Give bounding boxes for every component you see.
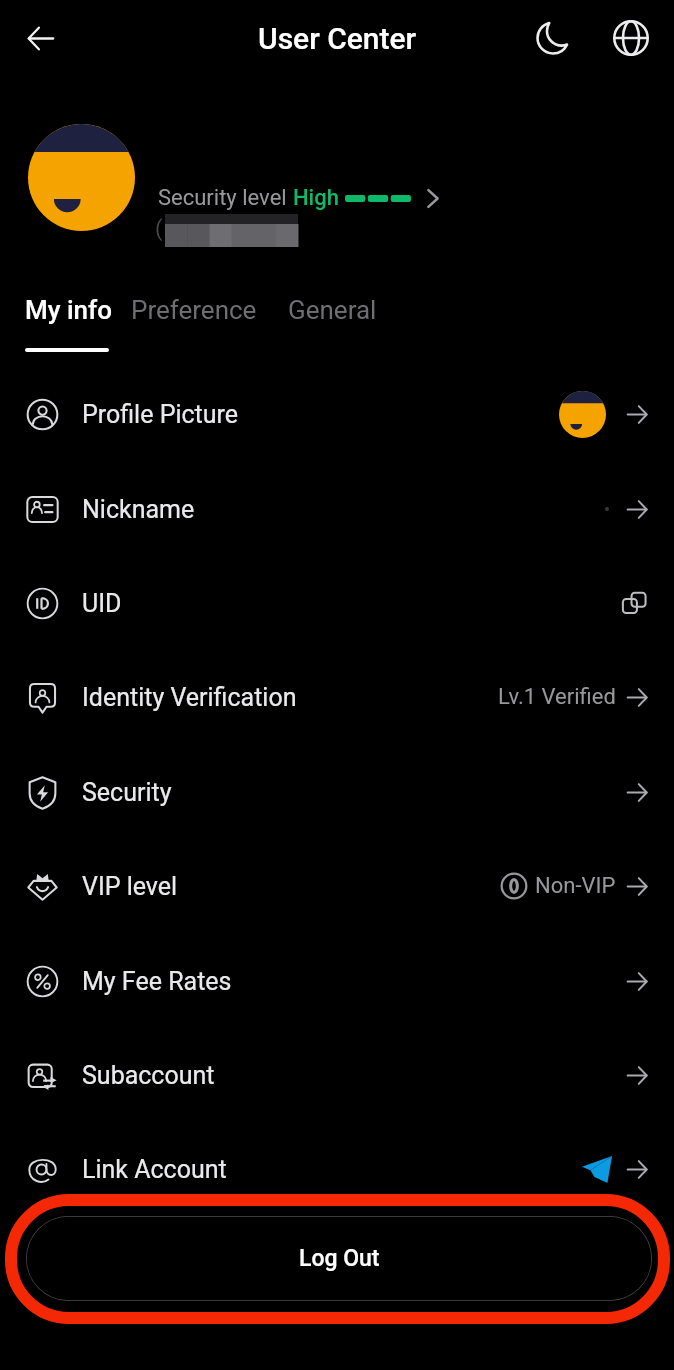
button[interactable]: Identity Verification: [0, 650, 674, 744]
button[interactable]: Language: [605, 12, 657, 64]
staticText: Lv.1 Verified: [498, 684, 616, 710]
button[interactable]: My Fee Rates: [0, 934, 674, 1028]
staticText: Preference: [131, 295, 257, 325]
staticText: Security level: [158, 185, 293, 211]
button[interactable]: UID: [0, 556, 674, 650]
staticText: (: [155, 216, 163, 242]
button[interactable]: Back: [14, 12, 66, 64]
staticText: Nickname: [82, 495, 195, 524]
button[interactable]: Preference: [131, 295, 257, 325]
staticText: General: [288, 295, 377, 325]
staticText: Security: [82, 778, 172, 807]
staticText: Non-VIP: [535, 873, 616, 899]
button[interactable]: VIP level: [0, 839, 674, 933]
button[interactable]: Link Account: [0, 1122, 674, 1216]
staticText: Log Out: [299, 1245, 380, 1272]
button[interactable]: Log Out: [26, 1216, 652, 1301]
staticText: My info: [25, 295, 112, 325]
staticText: UID: [82, 589, 122, 618]
button[interactable]: Subaccount: [0, 1028, 674, 1122]
staticText: High: [293, 185, 339, 211]
staticText: User Center: [258, 21, 417, 56]
staticText: Profile Picture: [82, 400, 239, 429]
button[interactable]: Security: [0, 745, 674, 839]
staticText: Subaccount: [82, 1061, 215, 1090]
staticText: VIP level: [82, 872, 178, 901]
staticText: My Fee Rates: [82, 967, 232, 996]
staticText: Link Account: [82, 1155, 227, 1184]
button[interactable]: Security level: [150, 182, 448, 214]
button[interactable]: Profile Picture: [0, 367, 674, 461]
button[interactable]: General: [288, 295, 377, 325]
staticText: Identity Verification: [82, 683, 297, 712]
button[interactable]: Dark mode: [527, 12, 579, 64]
button[interactable]: Nickname: [0, 462, 674, 556]
button[interactable]: My info: [25, 295, 112, 325]
